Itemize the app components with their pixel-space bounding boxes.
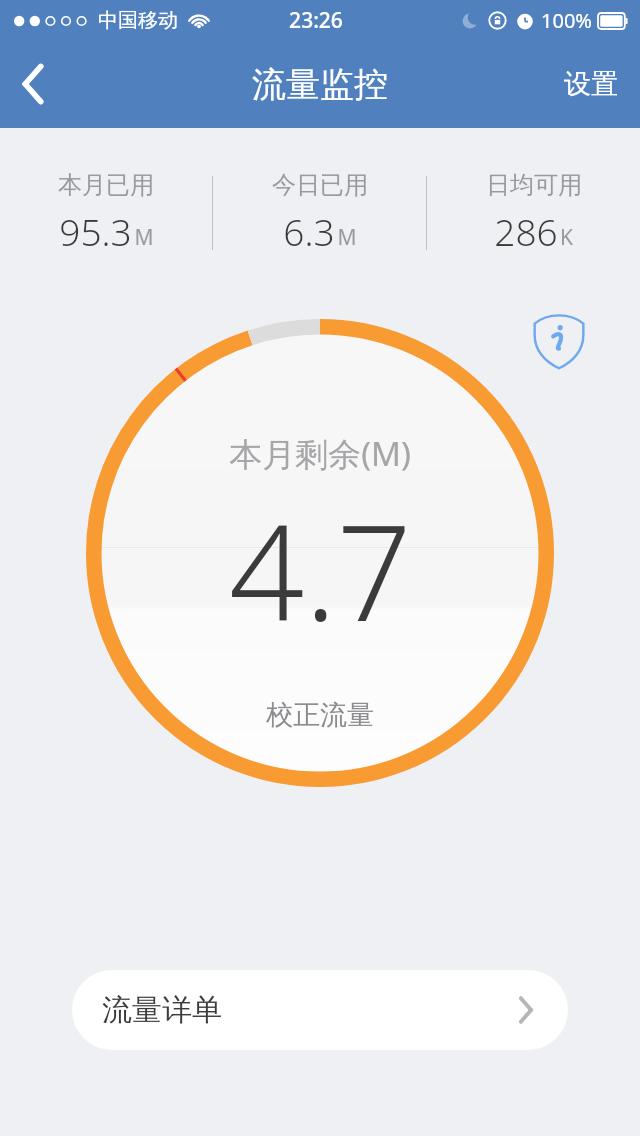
button[interactable]: 设置 — [542, 53, 640, 115]
button[interactable]: Back — [0, 51, 66, 117]
staticText: 本月已用 — [58, 170, 154, 200]
staticText: 流量详单 — [102, 991, 222, 1029]
staticText: M — [134, 223, 154, 252]
staticText: 中国移动 — [98, 8, 178, 33]
staticText: 设置 — [564, 67, 618, 101]
staticText: 4.7 — [229, 480, 412, 660]
button[interactable]: 本月已用 — [0, 170, 212, 256]
button[interactable]: 校正流量 — [232, 688, 408, 742]
staticText: 今日已用 — [272, 170, 368, 200]
staticText: 23:26 — [289, 6, 343, 35]
button[interactable]: 今日已用 — [213, 170, 426, 256]
button[interactable]: 流量详单 — [72, 970, 568, 1050]
staticText: 6.3 — [283, 206, 335, 256]
staticText: 本月剩余(M) — [229, 431, 411, 476]
staticText: 95.3 — [59, 206, 132, 256]
staticText: 流量监控 — [252, 63, 388, 106]
button[interactable]: Info — [530, 312, 588, 370]
button[interactable]: 日均可用 — [427, 170, 640, 256]
staticText: M — [337, 223, 357, 252]
staticText: 日均可用 — [486, 170, 582, 200]
staticText: 100% — [541, 7, 592, 34]
staticText: 校正流量 — [266, 698, 374, 732]
staticText: 286 — [494, 206, 558, 256]
staticText: K — [560, 223, 573, 252]
